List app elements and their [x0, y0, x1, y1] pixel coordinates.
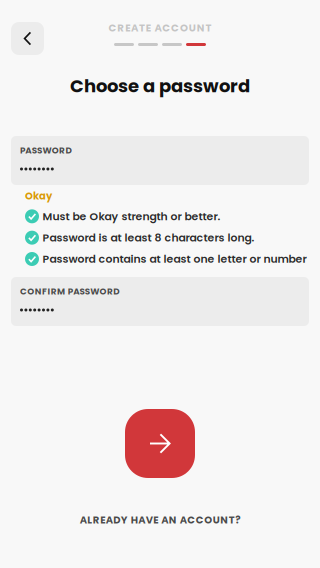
button[interactable]: ALREADY HAVE AN ACCOUNT? [0, 508, 320, 532]
staticText: CONFIRM PASSWORD [20, 285, 119, 298]
staticText: Okay [25, 189, 52, 203]
staticText: CREATE ACCOUNT [108, 21, 211, 35]
staticText: PASSWORD [20, 144, 71, 157]
staticText: Password is at least 8 characters long. [42, 230, 254, 245]
staticText: Must be Okay strength or better. [42, 209, 220, 224]
button[interactable]: Continue [125, 409, 195, 478]
button[interactable]: Back [11, 22, 44, 55]
staticText: ALREADY HAVE AN ACCOUNT? [80, 513, 240, 527]
staticText: Choose a password [70, 73, 250, 99]
staticText: Password contains at least one letter or… [42, 251, 306, 267]
